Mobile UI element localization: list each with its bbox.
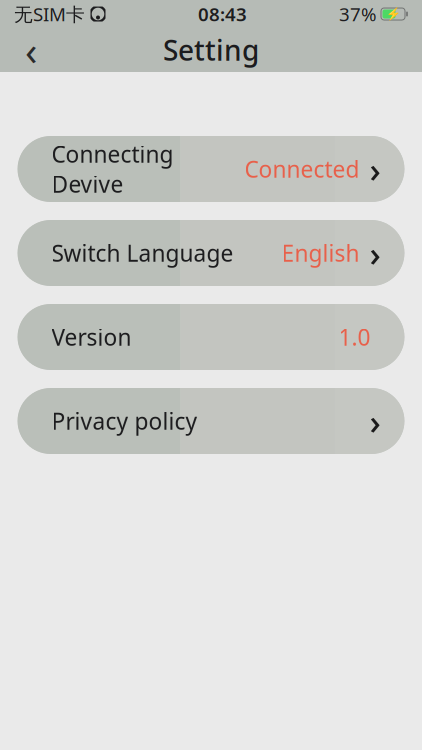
staticText: 08:43 xyxy=(198,2,247,26)
staticText: Connecting Devive xyxy=(51,139,173,199)
staticText: › xyxy=(369,398,380,444)
staticText: ‹ xyxy=(25,23,37,76)
staticText: 37% xyxy=(339,2,377,26)
staticText: › xyxy=(369,230,380,276)
staticText: ⚡ xyxy=(385,7,400,21)
staticText: Privacy policy xyxy=(51,406,197,436)
button[interactable]: Switch Language xyxy=(17,220,404,286)
button[interactable]: Back xyxy=(8,28,54,72)
staticText: Switch Language xyxy=(51,238,233,268)
staticText: › xyxy=(369,146,380,192)
button[interactable]: Connecting Devive xyxy=(17,136,404,202)
button[interactable]: Version xyxy=(17,304,404,370)
staticText: Setting xyxy=(163,31,259,69)
staticText: Connected xyxy=(244,154,359,184)
staticText: English xyxy=(281,238,359,268)
staticText: Version xyxy=(51,322,131,352)
staticText: 无SIM卡 xyxy=(14,2,85,26)
button[interactable]: Privacy policy xyxy=(17,388,404,454)
staticText: 1.0 xyxy=(338,322,370,352)
